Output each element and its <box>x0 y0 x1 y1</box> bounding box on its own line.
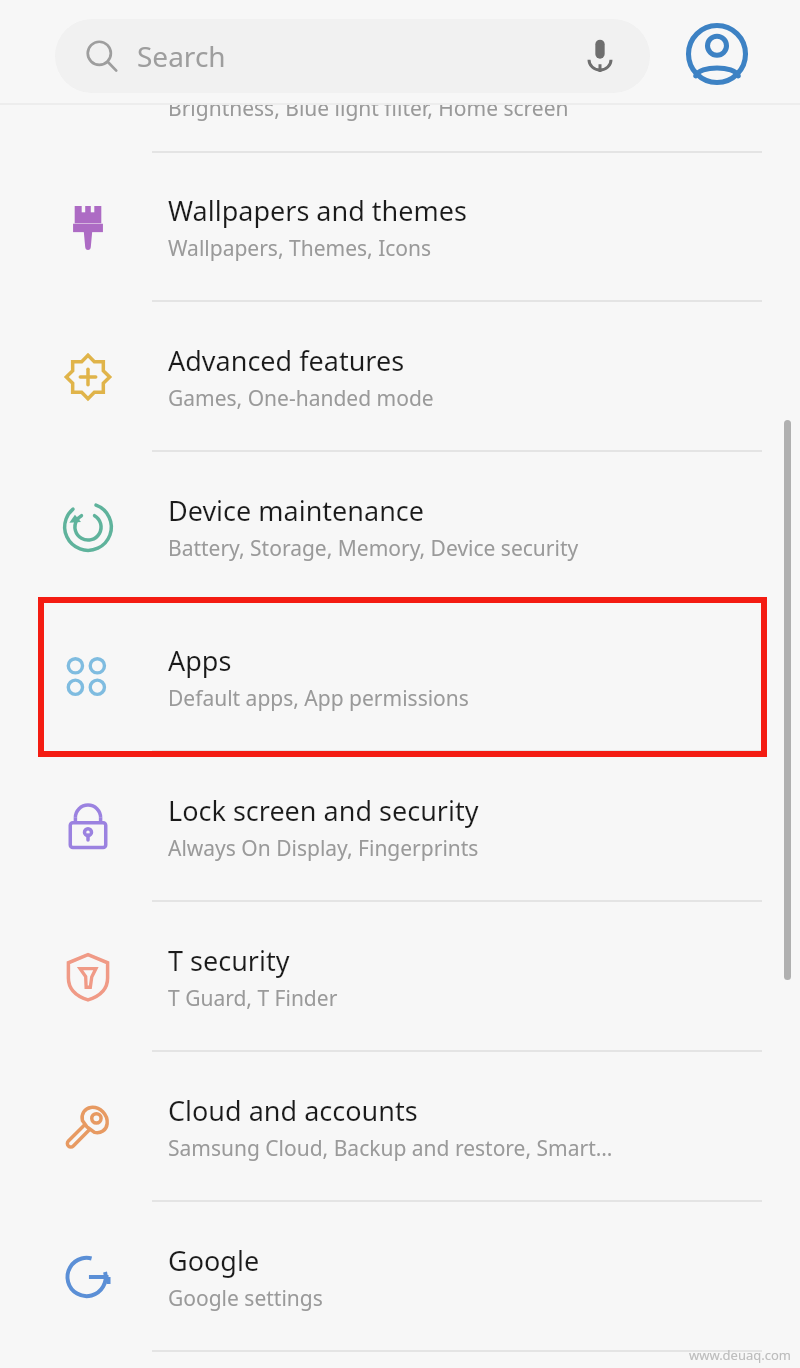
staticText: www.deuaq.com <box>689 1346 792 1364</box>
staticText: Always On Display, Fingerprints <box>168 834 479 863</box>
staticText: Samsung Cloud, Backup and restore, Smart… <box>168 1134 613 1163</box>
staticText: Apps <box>168 642 232 679</box>
staticText: Wallpapers and themes <box>168 192 467 229</box>
staticText: T security <box>168 942 290 979</box>
button[interactable]: Search <box>55 19 650 93</box>
staticText: Device maintenance <box>168 492 425 529</box>
staticText: Default apps, App permissions <box>168 684 469 713</box>
button[interactable]: Lock screen and security <box>0 752 800 902</box>
button[interactable]: Account <box>679 16 755 92</box>
staticText: Search <box>137 37 580 75</box>
staticText: Google <box>168 1242 260 1279</box>
staticText: Google settings <box>168 1284 323 1313</box>
button[interactable]: Google <box>0 1202 800 1352</box>
button[interactable]: Wallpapers and themes <box>0 152 800 302</box>
staticText: Games, One-handed mode <box>168 384 434 413</box>
button[interactable]: Device maintenance <box>0 452 800 602</box>
staticText: Lock screen and security <box>168 792 479 829</box>
button[interactable]: T security <box>0 902 800 1052</box>
staticText: T Guard, T Finder <box>168 984 338 1013</box>
button[interactable]: Voice search <box>580 36 620 76</box>
staticText: Brightness, Blue light filter, Home scre… <box>168 94 569 123</box>
button[interactable]: Cloud and accounts <box>0 1052 800 1202</box>
staticText: Cloud and accounts <box>168 1092 418 1129</box>
button[interactable]: Advanced features <box>0 302 800 452</box>
staticText: Advanced features <box>168 342 405 379</box>
staticText: Battery, Storage, Memory, Device securit… <box>168 534 579 563</box>
button[interactable]: Apps <box>0 602 800 752</box>
staticText: Wallpapers, Themes, Icons <box>168 234 432 263</box>
